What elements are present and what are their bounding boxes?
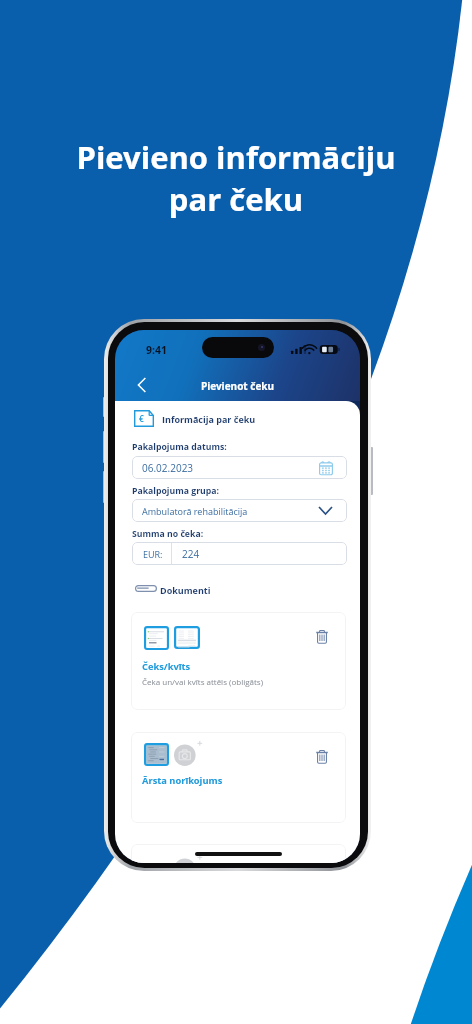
staticText: Pakalpojuma datums: [132, 441, 227, 453]
staticText: Ārsta norīkojums [142, 774, 223, 787]
staticText: Pievieno informāciju par čeku [0, 136, 472, 220]
staticText: Pievienot čeku [115, 379, 360, 393]
staticText: Summa no čeka: [132, 528, 204, 540]
button[interactable]: Delete [311, 624, 332, 648]
button[interactable]: Back [129, 374, 155, 396]
staticText: 06.02.2023 [142, 461, 194, 475]
staticText: Informācija par čeku [162, 413, 256, 425]
button[interactable]: Delete [311, 744, 332, 768]
staticText: Dokumenti [160, 584, 211, 596]
staticText: Ambulatorā rehabilitācija [142, 505, 248, 517]
staticText: Pakalpojuma grupa: [132, 485, 220, 497]
button[interactable]: Čeks/kvīts [131, 612, 346, 710]
staticText: Čeks/kvīts [142, 660, 191, 673]
staticText: 9:41 [146, 343, 167, 357]
button[interactable] [131, 844, 346, 863]
staticText: Čeka un/vai kvīts attēls (obligāts) [142, 676, 264, 687]
staticText: € [139, 413, 144, 424]
staticText: 224 [182, 547, 200, 561]
button[interactable]: 06.02.2023 [132, 456, 347, 479]
button[interactable]: Ārsta norīkojums [131, 732, 346, 823]
button[interactable]: EUR: [132, 542, 347, 565]
staticText: EUR: [143, 548, 163, 560]
button[interactable]: Ambulatorā rehabilitācija [132, 499, 347, 522]
